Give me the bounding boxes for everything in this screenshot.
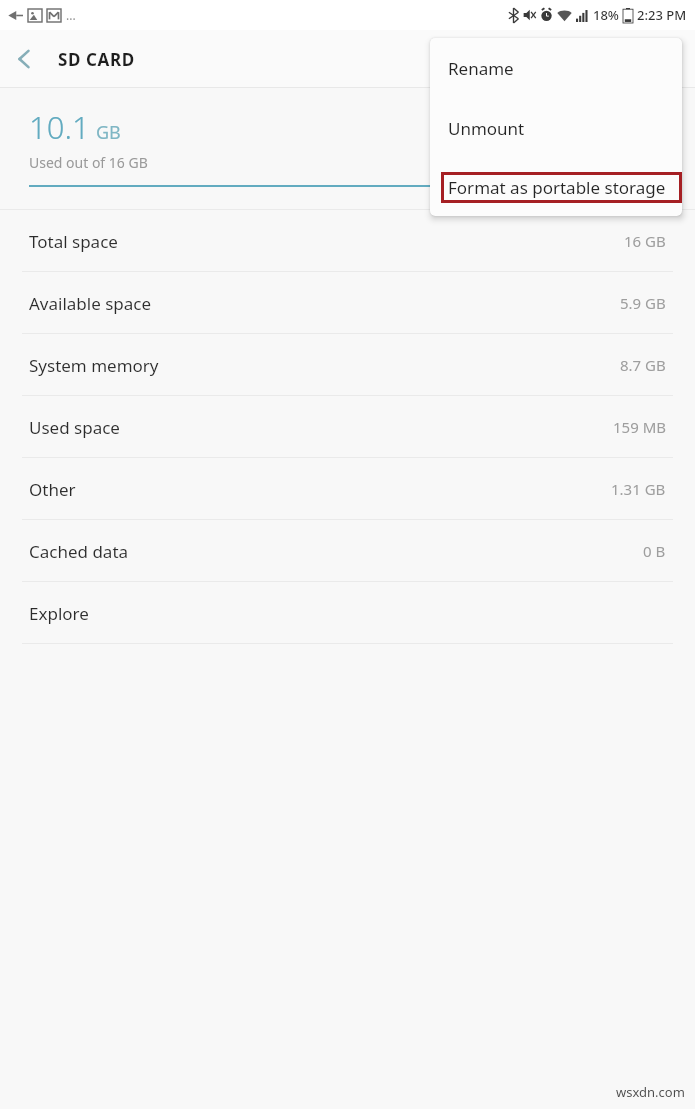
staticText: Used out of 16 GB xyxy=(29,153,148,172)
staticText: 10.1 xyxy=(29,106,90,148)
button[interactable]: Other xyxy=(0,458,695,520)
staticText: wsxdn.com xyxy=(616,1083,685,1101)
button[interactable]: Rename xyxy=(430,38,682,98)
button[interactable]: Explore xyxy=(0,582,695,644)
staticText: 16 GB xyxy=(624,231,666,251)
staticText: Explore xyxy=(29,602,89,625)
button[interactable]: Back xyxy=(0,35,48,83)
staticText: 0 B xyxy=(643,541,666,561)
staticText: ... xyxy=(66,7,76,23)
staticText: Cached data xyxy=(29,540,129,563)
staticText: Unmount xyxy=(448,117,525,140)
button[interactable]: Cached data xyxy=(0,520,695,582)
button[interactable]: Unmount xyxy=(430,98,682,158)
staticText: Other xyxy=(29,478,76,501)
staticText: SD CARD xyxy=(58,48,135,71)
staticText: 5.9 GB xyxy=(620,293,666,313)
button[interactable]: Used space xyxy=(0,396,695,458)
staticText: Rename xyxy=(448,57,514,80)
staticText: 2:23 PM xyxy=(637,6,687,24)
staticText: 8.7 GB xyxy=(620,355,666,375)
staticText: Available space xyxy=(29,292,152,315)
staticText: GB xyxy=(96,120,121,145)
staticText: 159 MB xyxy=(613,417,666,437)
staticText: Format as portable storage xyxy=(448,176,666,199)
button[interactable]: Total space xyxy=(0,210,695,272)
button[interactable]: System memory xyxy=(0,334,695,396)
staticText: 18% xyxy=(593,6,619,24)
staticText: 1.31 GB xyxy=(611,479,666,499)
staticText: System memory xyxy=(29,354,159,377)
staticText: Used space xyxy=(29,416,120,439)
staticText: Total space xyxy=(29,230,118,253)
button[interactable]: Format as portable storage xyxy=(430,158,682,216)
button[interactable]: Available space xyxy=(0,272,695,334)
